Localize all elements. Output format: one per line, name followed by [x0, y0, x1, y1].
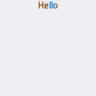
staticText: Hello: [38, 0, 58, 11]
